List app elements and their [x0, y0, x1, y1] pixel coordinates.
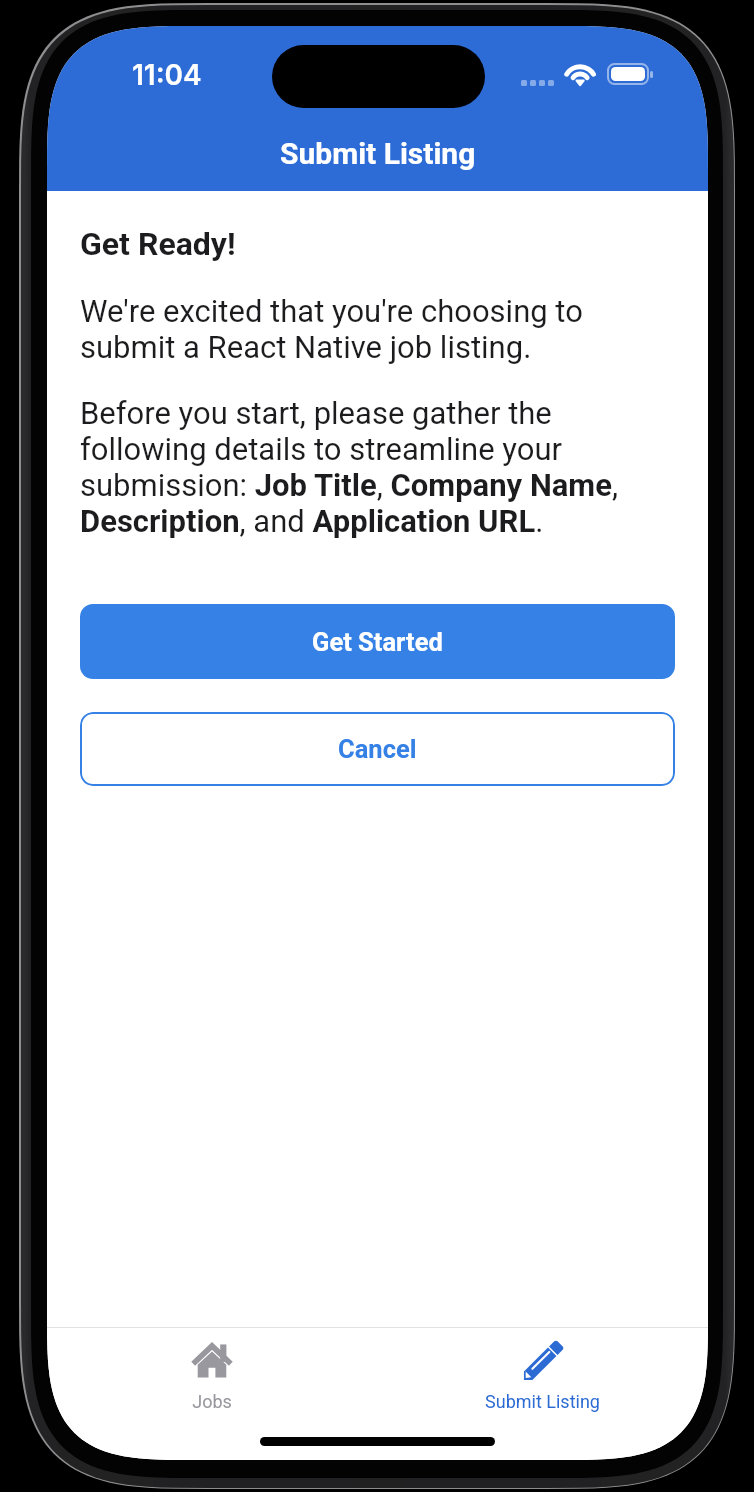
staticText: Before you start, please gather the foll… [80, 395, 675, 539]
staticText: Get Started [312, 627, 443, 657]
button[interactable]: Submit Listing [377, 1327, 708, 1460]
other: Jobs [188, 1339, 236, 1383]
staticText: Get Ready! [80, 225, 236, 263]
button[interactable]: Jobs [47, 1327, 377, 1460]
button[interactable]: Get Started [80, 604, 675, 679]
staticText: Submit Listing [485, 1391, 600, 1412]
staticText: We're excited that you're choosing to su… [80, 293, 675, 365]
staticText: 11:04 [132, 58, 202, 92]
staticText: Jobs [192, 1391, 232, 1412]
button[interactable]: Cancel [80, 712, 675, 786]
staticText: Submit Listing [280, 136, 476, 171]
staticText: Cancel [338, 734, 417, 764]
other: Submit Listing [519, 1339, 567, 1383]
